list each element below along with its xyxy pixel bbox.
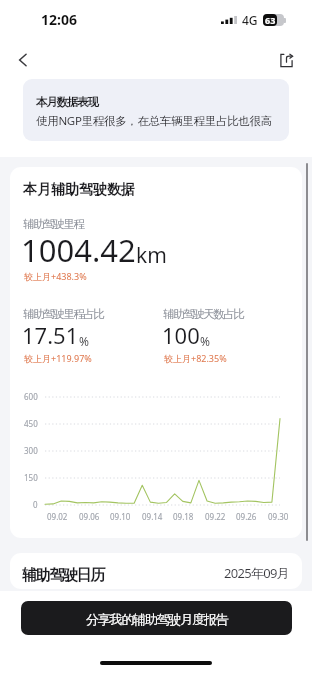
- staticText: 使用NGP里程很多，在总车辆里程里占比也很高: [36, 113, 272, 129]
- staticText: 辅助驾驶里程占比: [24, 307, 104, 321]
- staticText: 09.10: [110, 511, 131, 522]
- staticText: 09.26: [236, 511, 257, 522]
- staticText: 17.51: [22, 320, 79, 350]
- staticText: 450: [24, 418, 38, 429]
- staticText: 本月辅助驾驶数据: [23, 181, 135, 199]
- staticText: 09.14: [142, 511, 163, 522]
- staticText: 2025年09月: [224, 564, 290, 582]
- button[interactable]: Back: [8, 45, 38, 75]
- staticText: 分享我的辅助驾驶月度报告: [86, 611, 228, 627]
- button[interactable]: Share: [271, 45, 301, 75]
- staticText: 150: [24, 472, 38, 483]
- staticText: 辅助驾驶天数占比: [164, 307, 244, 321]
- staticText: 本月数据表现: [36, 95, 98, 109]
- staticText: 63: [265, 14, 276, 26]
- staticText: 09.30: [268, 511, 289, 522]
- button[interactable]: 辅助驾驶日历: [10, 553, 302, 589]
- staticText: 09.02: [47, 511, 68, 522]
- staticText: 09.18: [173, 511, 194, 522]
- staticText: 12:06: [41, 10, 77, 29]
- staticText: %: [200, 333, 210, 349]
- staticText: 600: [24, 391, 38, 402]
- staticText: 较上月+119.97%: [24, 352, 92, 364]
- staticText: 09.06: [79, 511, 100, 522]
- staticText: 100: [162, 320, 200, 350]
- staticText: 较上月+438.3%: [24, 270, 87, 282]
- staticText: 较上月+82.35%: [164, 352, 227, 364]
- staticText: %: [79, 333, 89, 349]
- staticText: 辅助驾驶里程: [24, 217, 84, 231]
- button[interactable]: 分享我的辅助驾驶月度报告: [21, 601, 292, 635]
- staticText: 4G: [242, 12, 258, 28]
- staticText: 300: [24, 445, 38, 456]
- staticText: km: [136, 241, 167, 270]
- staticText: 09.22: [205, 511, 226, 522]
- staticText: 1004.42: [21, 229, 136, 271]
- staticText: 0: [33, 499, 38, 510]
- staticText: 辅助驾驶日历: [22, 566, 105, 585]
